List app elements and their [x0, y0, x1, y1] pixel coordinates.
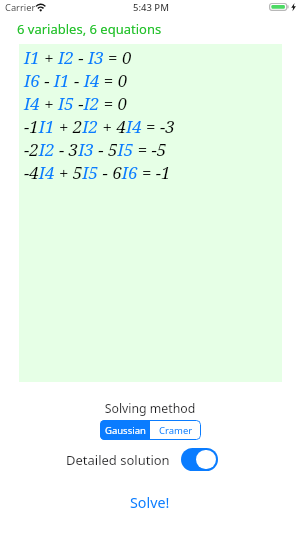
staticText: I4 + I5 -I2 = 0 — [24, 92, 128, 115]
staticText: -1I1 + 2I2 + 4I4 = -3 — [24, 115, 175, 138]
staticText: Cramer — [159, 424, 193, 437]
button[interactable]: Cramer — [150, 420, 201, 440]
staticText: 6 variables, 6 equations — [17, 20, 162, 38]
staticText: Solving method — [0, 400, 300, 417]
staticText: Carrier — [5, 1, 36, 14]
staticText: Detailed solution — [66, 451, 170, 469]
button[interactable]: Detailed solution toggle — [181, 448, 218, 471]
staticText: Solve! — [130, 493, 170, 512]
button[interactable]: Solve! — [0, 490, 300, 514]
staticText: I1 + I2 - I3 = 0 — [24, 46, 132, 69]
staticText: Gaussian — [105, 424, 146, 437]
staticText: I6 - I1 - I4 = 0 — [24, 69, 128, 92]
staticText: -2I2 - 3I3 - 5I5 = -5 — [24, 138, 167, 161]
staticText: -4I4 + 5I5 - 6I6 = -1 — [24, 161, 171, 184]
button[interactable]: Gaussian — [100, 420, 150, 440]
staticText: 5:43 PM — [133, 1, 169, 14]
